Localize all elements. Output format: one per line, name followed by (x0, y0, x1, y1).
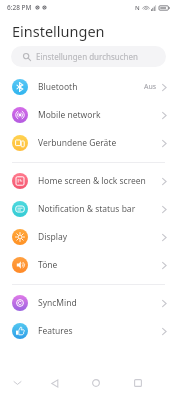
staticText: SyncMind (38, 297, 77, 309)
staticText: N (135, 4, 140, 12)
staticText: 6:28 PM (7, 3, 32, 12)
button[interactable]: Hide navigation bar (0, 372, 34, 394)
button[interactable]: Notification & status bar (0, 195, 177, 223)
staticText: Einstellungen (12, 21, 105, 41)
staticText: Töne (38, 259, 58, 271)
button[interactable]: Back (34, 372, 75, 394)
button[interactable]: Display (0, 223, 177, 251)
staticText: Bluetooth (38, 81, 78, 93)
button[interactable]: Recent apps (117, 372, 159, 394)
button[interactable]: Töne (0, 251, 177, 279)
button[interactable]: Verbundene Geräte (0, 129, 177, 157)
staticText: Mobile network (38, 109, 101, 121)
button[interactable]: SyncMind (0, 289, 177, 317)
staticText: Home screen & lock screen (38, 175, 146, 187)
staticText: Notification & status bar (38, 203, 136, 215)
button[interactable]: Mobile network (0, 101, 177, 129)
button[interactable]: Bluetooth (0, 73, 177, 101)
staticText: Verbundene Geräte (38, 137, 117, 149)
staticText: Einstellungen durchsuchen (36, 51, 138, 62)
button[interactable]: Home (75, 372, 117, 394)
staticText: Display (38, 231, 67, 243)
staticText: Aus (144, 82, 157, 92)
button[interactable]: Features (0, 317, 177, 345)
button[interactable]: Einstellungen durchsuchen (11, 46, 166, 67)
button[interactable]: Home screen & lock screen (0, 167, 177, 195)
staticText: Features (38, 325, 73, 337)
